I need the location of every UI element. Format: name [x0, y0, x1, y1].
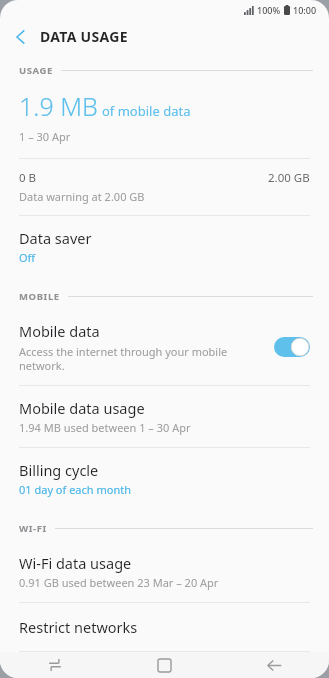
staticText: WI-FI: [19, 522, 47, 535]
button[interactable]: Mobile data toggle: [274, 337, 310, 357]
staticText: Wi-Fi data usage: [19, 553, 132, 573]
staticText: DATA USAGE: [40, 27, 128, 46]
staticText: 0 B: [19, 170, 37, 186]
button[interactable]: Back: [0, 20, 40, 53]
staticText: USAGE: [19, 64, 53, 77]
staticText: 1 – 30 Apr: [19, 129, 71, 144]
button[interactable]: Data saver: [0, 216, 329, 279]
staticText: Data warning at 2.00 GB: [19, 189, 145, 204]
button[interactable]: Mobile data: [0, 311, 329, 385]
button[interactable]: 0 B: [0, 170, 329, 204]
staticText: Access the internet through your mobile …: [19, 344, 228, 373]
staticText: Mobile data usage: [19, 398, 145, 418]
staticText: 2.00 GB: [268, 170, 310, 186]
button[interactable]: Billing cycle: [0, 448, 329, 511]
staticText: of mobile data: [102, 102, 191, 120]
button[interactable]: 1.9 MB: [0, 89, 329, 144]
staticText: Off: [19, 250, 36, 265]
button[interactable]: Wi-Fi data usage: [0, 543, 329, 602]
button[interactable]: Recents: [0, 652, 109, 678]
staticText: MOBILE: [19, 290, 60, 303]
staticText: Restrict networks: [19, 617, 138, 637]
staticText: 0.91 GB used between 23 Mar – 20 Apr: [19, 575, 219, 590]
staticText: 1.9 MB: [19, 89, 98, 123]
staticText: Billing cycle: [19, 460, 99, 480]
button[interactable]: Mobile data usage: [0, 386, 329, 447]
button[interactable]: Back: [219, 652, 329, 678]
staticText: 10:00: [293, 4, 317, 16]
staticText: 01 day of each month: [19, 482, 131, 497]
staticText: 100%: [257, 4, 281, 16]
button[interactable]: Home: [109, 652, 219, 678]
button[interactable]: Restrict networks: [0, 603, 329, 651]
staticText: 1.94 MB used between 1 – 30 Apr: [19, 420, 191, 435]
staticText: Mobile data: [19, 321, 100, 341]
staticText: Data saver: [19, 228, 92, 248]
